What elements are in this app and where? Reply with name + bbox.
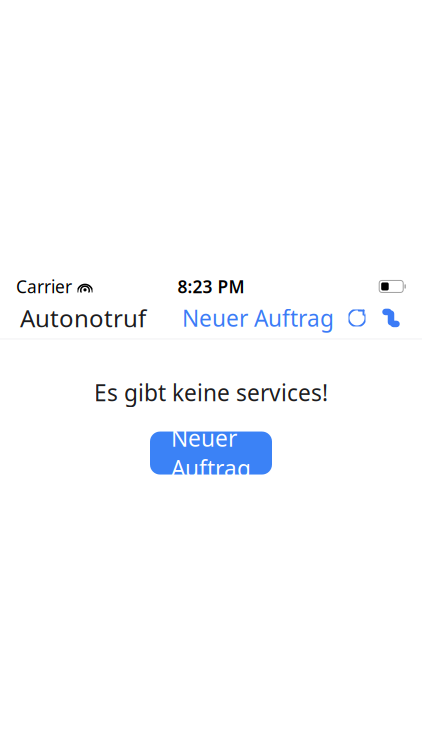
staticText: Neuer Auftrag xyxy=(182,303,334,333)
staticText: Es gibt keine services! xyxy=(94,377,328,407)
button[interactable]: Neuer Auftrag xyxy=(150,432,272,475)
staticText: Neuer Auftrag xyxy=(171,423,251,483)
staticText: 8:23 PM xyxy=(177,275,244,298)
staticText: Carrier xyxy=(16,275,72,298)
staticText: Autonotruf xyxy=(20,302,146,334)
button[interactable]: Neuer Auftrag xyxy=(182,303,334,333)
button[interactable]: Aktualisieren xyxy=(346,307,368,329)
button[interactable]: Anrufen xyxy=(380,307,402,329)
